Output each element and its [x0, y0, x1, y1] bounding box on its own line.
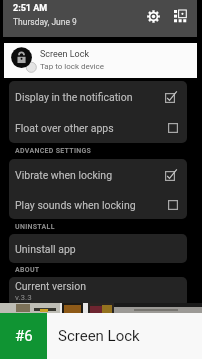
button[interactable]: Screen Lock	[4, 43, 197, 78]
staticText: ABOUT	[15, 266, 40, 274]
staticText: Float over other apps	[15, 122, 168, 134]
button[interactable]: All apps	[170, 6, 190, 26]
staticText: #6	[15, 327, 33, 345]
button[interactable]: Vibrate when locking	[9, 159, 187, 190]
staticText: Thursday, June 9	[13, 17, 77, 27]
button[interactable]: Float over other apps	[9, 112, 187, 143]
button[interactable]: #6	[0, 313, 202, 359]
staticText: Screen Lock	[58, 327, 140, 345]
staticText: 2:51 AM	[13, 3, 48, 14]
staticText: Current version	[15, 280, 86, 292]
button[interactable]: Current version	[9, 277, 187, 307]
staticText: UNINSTALL	[15, 223, 55, 231]
staticText: Display in the notification	[15, 91, 165, 103]
staticText: Uninstall app	[15, 243, 76, 255]
button[interactable]: Settings	[143, 6, 163, 26]
staticText: v.3.3	[15, 293, 32, 302]
staticText: Play sounds when locking	[15, 199, 168, 211]
staticText: Screen Lock	[40, 49, 90, 60]
button[interactable]: Play sounds when locking	[9, 190, 187, 219]
staticText: ADVANCED SETTINGS	[15, 147, 92, 155]
button[interactable]: Uninstall app	[9, 234, 187, 263]
staticText: Vibrate when locking	[15, 169, 165, 181]
staticText: Tap to lock device	[40, 62, 104, 71]
button[interactable]: Display in the notification	[9, 81, 187, 112]
